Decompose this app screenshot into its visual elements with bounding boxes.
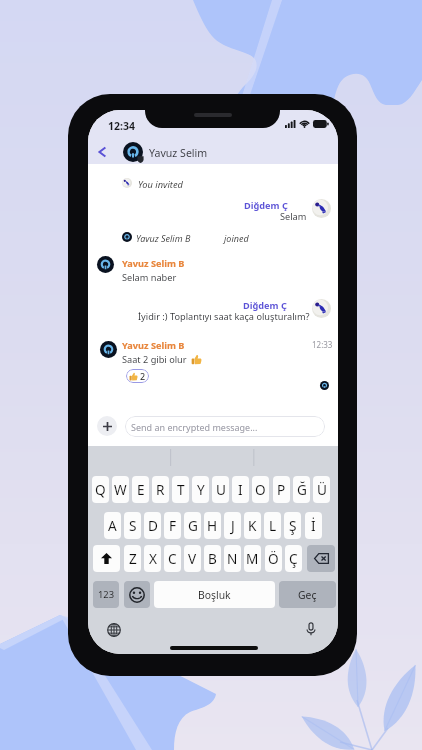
- button[interactable]: Change keyboard: [106, 622, 122, 638]
- button[interactable]: T: [172, 476, 189, 503]
- button[interactable]: Ç: [285, 545, 302, 572]
- button[interactable]: O: [252, 476, 269, 503]
- staticText: U: [216, 480, 226, 499]
- staticText: O: [255, 480, 266, 499]
- staticText: Selam: [280, 210, 307, 223]
- staticText: H: [207, 516, 218, 535]
- button[interactable]: Q: [92, 476, 109, 503]
- staticText: A: [108, 516, 117, 535]
- staticText: E: [137, 480, 145, 499]
- staticText: Ö: [268, 549, 279, 568]
- staticText: 12:33: [312, 339, 333, 350]
- button[interactable]: K: [244, 512, 261, 539]
- staticText: C: [168, 549, 177, 568]
- button[interactable]: C: [164, 545, 181, 572]
- staticText: 123: [98, 588, 115, 601]
- staticText: P: [277, 480, 286, 499]
- button[interactable]: Voice input: [303, 621, 319, 637]
- staticText: joined: [224, 232, 249, 244]
- staticText: İ: [311, 516, 316, 535]
- button[interactable]: N: [224, 545, 241, 572]
- staticText: Yavuz Selim B: [136, 232, 191, 244]
- staticText: I: [238, 480, 243, 499]
- button[interactable]: S: [124, 512, 141, 539]
- staticText: G: [188, 516, 198, 535]
- button[interactable]: X: [144, 545, 161, 572]
- staticText: W: [114, 480, 127, 499]
- button[interactable]: W: [112, 476, 129, 503]
- staticText: T: [177, 480, 185, 499]
- staticText: Ğ: [297, 480, 307, 499]
- staticText: J: [231, 516, 235, 535]
- button[interactable]: Z: [124, 545, 141, 572]
- button[interactable]: P: [273, 476, 290, 503]
- button[interactable]: I: [232, 476, 249, 503]
- button[interactable]: R: [152, 476, 169, 503]
- staticText: Diğdem Ç: [244, 199, 288, 212]
- staticText: Saat 2 gibi olur: [122, 353, 187, 366]
- button[interactable]: Ğ: [293, 476, 310, 503]
- staticText: Ş: [289, 516, 297, 535]
- button[interactable]: Shift: [93, 545, 120, 572]
- staticText: Send an encrypted message...: [131, 421, 258, 433]
- staticText: Diğdem Ç: [243, 299, 287, 312]
- button[interactable]: J: [224, 512, 241, 539]
- button[interactable]: M: [244, 545, 261, 572]
- staticText: V: [188, 549, 197, 568]
- button[interactable]: İ: [305, 512, 322, 539]
- button[interactable]: D: [144, 512, 161, 539]
- button[interactable]: Emoji: [124, 581, 150, 608]
- staticText: D: [148, 516, 158, 535]
- button[interactable]: A: [104, 512, 121, 539]
- staticText: M: [246, 549, 259, 568]
- button[interactable]: Add attachment: [97, 416, 117, 436]
- staticText: Q: [95, 480, 106, 499]
- staticText: Y: [197, 480, 205, 499]
- staticText: Ç: [289, 549, 298, 568]
- staticText: R: [156, 480, 165, 499]
- staticText: N: [227, 549, 238, 568]
- staticText: Z: [129, 549, 137, 568]
- button[interactable]: 2: [126, 369, 149, 383]
- button[interactable]: Back: [95, 145, 109, 159]
- button[interactable]: B: [204, 545, 221, 572]
- staticText: Ü: [317, 480, 327, 499]
- staticText: Yavuz Selim B: [122, 257, 185, 270]
- button[interactable]: E: [132, 476, 149, 503]
- staticText: B: [208, 549, 217, 568]
- button[interactable]: L: [264, 512, 281, 539]
- button[interactable]: Ü: [313, 476, 330, 503]
- staticText: 12:34: [108, 119, 135, 133]
- button[interactable]: H: [204, 512, 221, 539]
- staticText: Selam naber: [122, 271, 177, 284]
- staticText: Geç: [298, 588, 317, 602]
- staticText: 2: [140, 370, 146, 382]
- staticText: F: [169, 516, 177, 535]
- staticText: İyidir :) Toplantıyı saat kaça oluştural…: [138, 310, 310, 323]
- button[interactable]: V: [184, 545, 201, 572]
- staticText: Yavuz Selim B: [122, 339, 185, 352]
- button[interactable]: Send an encrypted message...: [125, 416, 325, 437]
- staticText: L: [269, 516, 277, 535]
- button[interactable]: Boşluk: [154, 581, 275, 608]
- staticText: Boşluk: [198, 588, 231, 602]
- button[interactable]: U: [212, 476, 229, 503]
- button[interactable]: Ş: [284, 512, 301, 539]
- button[interactable]: Backspace: [307, 545, 335, 572]
- staticText: S: [129, 516, 137, 535]
- button[interactable]: G: [184, 512, 201, 539]
- button[interactable]: Geç: [279, 581, 336, 608]
- button[interactable]: F: [164, 512, 181, 539]
- staticText: K: [248, 516, 257, 535]
- button[interactable]: Y: [192, 476, 209, 503]
- staticText: X: [149, 549, 157, 568]
- staticText: Yavuz Selim: [149, 146, 208, 160]
- button[interactable]: Ö: [265, 545, 282, 572]
- button[interactable]: 123: [93, 581, 119, 608]
- staticText: You invited: [138, 178, 183, 191]
